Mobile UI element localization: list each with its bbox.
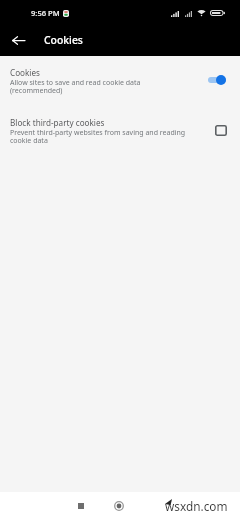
button[interactable]: Home [108,495,130,517]
button[interactable]: Cookies [0,62,240,102]
button[interactable]: Navigate back [4,26,32,54]
button[interactable]: Recent apps [70,495,92,517]
staticText: Block third-party cookies [10,117,105,128]
button[interactable]: Cookies toggle, on [202,69,232,91]
staticText: 9:56 PM [31,8,60,18]
staticText: Prevent third-party websites from saving… [10,128,186,145]
staticText: Cookies [10,67,40,78]
staticText: Cookies [44,33,83,47]
button[interactable]: Block third-party cookies [0,112,240,152]
button[interactable]: Block third-party cookies, off [206,117,236,143]
staticText: wsxdn.com [165,498,228,514]
staticText: Allow sites to save and read cookie data… [10,78,141,95]
